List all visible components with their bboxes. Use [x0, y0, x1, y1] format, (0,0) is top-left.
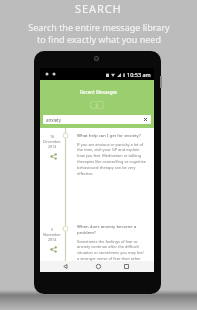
- button[interactable]: anxiety: [43, 115, 151, 124]
- staticText: Search the entire message library to fin…: [28, 21, 170, 45]
- staticText: 2014: [48, 237, 57, 242]
- staticText: 5: [51, 227, 54, 232]
- staticText: December: [43, 139, 61, 144]
- button[interactable]: 5: [40, 219, 154, 261]
- button[interactable]: Share: [50, 246, 57, 253]
- staticText: 10:53 am: [127, 71, 151, 78]
- button[interactable]: Recents: [121, 261, 132, 272]
- staticText: When does anxiety become a problem?: [77, 223, 146, 235]
- staticText: What help can I get for anxiety?: [77, 132, 141, 138]
- button[interactable]: Share: [50, 153, 57, 160]
- button[interactable]: 16: [40, 128, 154, 219]
- staticText: 16: [50, 134, 55, 139]
- staticText: November: [43, 232, 61, 237]
- button[interactable]: Download: [90, 101, 104, 109]
- staticText: Recent Messages: [80, 89, 118, 95]
- staticText: 2014: [48, 144, 57, 149]
- staticText: Sometimes the feelings of fear or anxiet…: [77, 239, 146, 261]
- staticText: anxiety: [46, 117, 61, 123]
- staticText: SEARCH: [75, 1, 122, 16]
- button[interactable]: Home: [93, 261, 104, 272]
- button[interactable]: Back: [60, 261, 71, 272]
- staticText: If you are anxious or panicky a lot of t…: [77, 142, 146, 177]
